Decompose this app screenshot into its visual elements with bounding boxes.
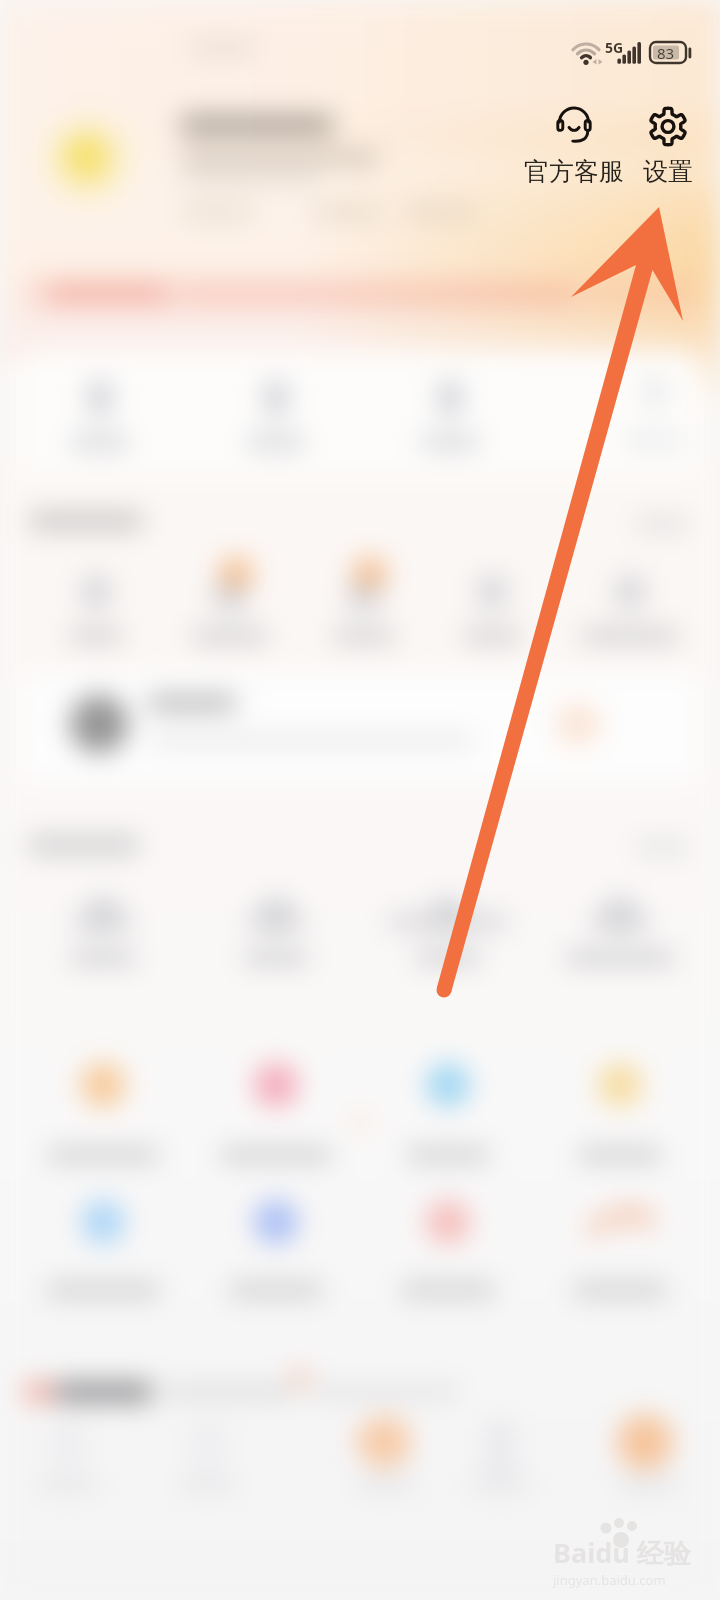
button[interactable]: 设置 xyxy=(636,104,700,187)
staticText: 设置 xyxy=(643,156,693,187)
staticText: Baidu 经验 xyxy=(553,1534,691,1571)
staticText: 83 xyxy=(657,43,675,63)
staticText: 官方客服 xyxy=(524,156,624,187)
staticText: jingyan.baidu.com xyxy=(553,1571,666,1589)
button[interactable]: 官方客服 xyxy=(521,104,627,187)
staticText: 5G xyxy=(605,38,624,57)
